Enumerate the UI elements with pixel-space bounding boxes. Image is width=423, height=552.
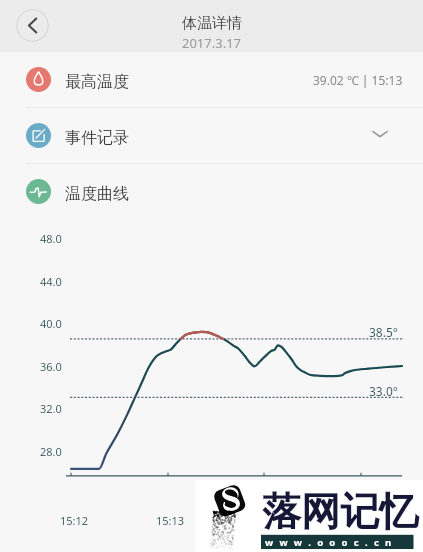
staticText: 最高温度 — [65, 72, 129, 92]
staticText: 落网记忆 — [262, 487, 419, 536]
staticText: 28.0 — [40, 444, 62, 459]
staticText: 体温详情 — [182, 14, 242, 33]
staticText: 48.0 — [40, 231, 62, 246]
staticText: 39.02 ℃ | 15:13 — [313, 72, 403, 88]
staticText: 15:13 — [156, 513, 185, 528]
staticText: 40.0 — [40, 316, 62, 331]
staticText: 44.0 — [40, 274, 62, 289]
button[interactable]: 事件记录 — [0, 108, 423, 163]
button[interactable]: Back — [16, 9, 49, 42]
staticText: 38.5° — [369, 324, 398, 340]
staticText: 2017.3.17 — [182, 34, 242, 52]
staticText: 32.0 — [40, 401, 62, 416]
button[interactable]: 温度曲线 — [0, 164, 423, 219]
button[interactable]: 最高温度 — [0, 52, 423, 107]
staticText: 33.0° — [369, 383, 398, 399]
staticText: 36.0 — [40, 359, 62, 374]
staticText: 事件记录 — [65, 128, 129, 148]
staticText: 15:12 — [60, 513, 89, 528]
staticText: 温度曲线 — [65, 184, 129, 204]
staticText: w w w . o o o c . c n — [265, 536, 394, 549]
